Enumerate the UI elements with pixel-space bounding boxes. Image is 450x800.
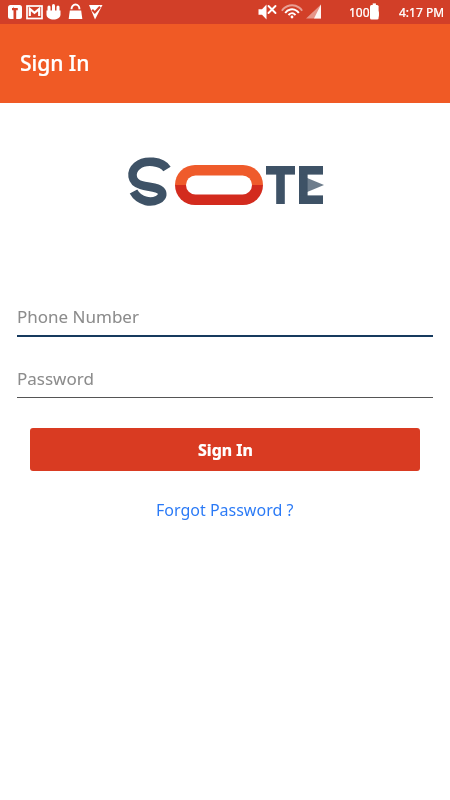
- staticText: Phone Number: [17, 305, 139, 328]
- staticText: Sign In: [20, 49, 90, 78]
- button[interactable]: Password: [17, 363, 433, 398]
- staticText: 100%: [349, 4, 380, 20]
- button[interactable]: Phone Number: [17, 301, 433, 337]
- staticText: Forgot Password ?: [156, 499, 294, 521]
- staticText: 4:17 PM: [399, 4, 445, 20]
- staticText: Sign In: [198, 439, 253, 461]
- button[interactable]: Forgot Password ?: [142, 494, 308, 526]
- staticText: Password: [17, 367, 94, 390]
- other: SOTE logo: [127, 153, 323, 215]
- button[interactable]: Sign In: [30, 428, 420, 471]
